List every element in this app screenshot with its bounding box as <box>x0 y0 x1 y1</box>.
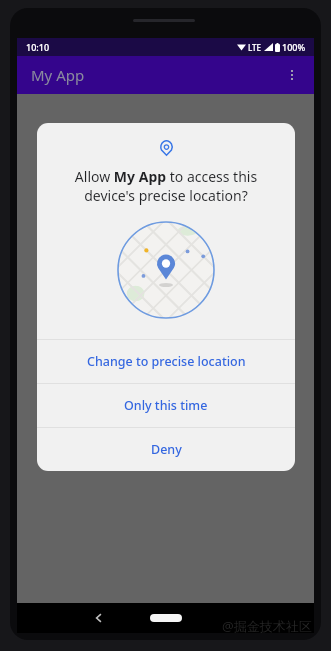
staticText: Only this time <box>124 397 208 414</box>
button[interactable]: Home <box>150 614 182 622</box>
staticText: 10:10 <box>26 41 50 53</box>
button[interactable]: Change to precise location <box>37 340 295 383</box>
button[interactable]: More options <box>280 63 304 87</box>
staticText: Allow My App to access this device's pre… <box>57 167 275 205</box>
staticText: Change to precise location <box>87 353 246 370</box>
staticText: LTE <box>248 42 262 53</box>
staticText: @掘金技术社区 <box>222 617 312 635</box>
button[interactable]: Only this time <box>37 384 295 427</box>
staticText: My App <box>31 65 85 85</box>
button[interactable]: Back <box>87 606 111 630</box>
button[interactable]: Deny <box>37 428 295 471</box>
staticText: 100% <box>282 41 306 53</box>
other: Location <box>160 140 173 156</box>
staticText: Deny <box>151 441 182 458</box>
